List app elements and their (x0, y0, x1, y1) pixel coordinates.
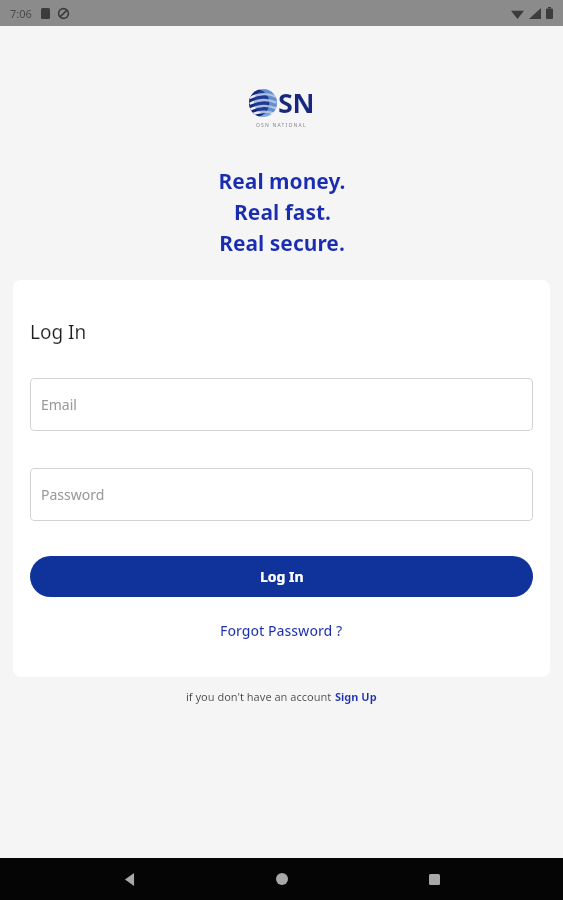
button[interactable]: Home (259, 858, 305, 900)
staticText: Log In (30, 319, 87, 345)
button[interactable]: Email (30, 378, 533, 431)
button[interactable]: Recent apps (411, 858, 457, 900)
staticText: Forgot Password ? (220, 621, 343, 640)
staticText: Real secure. (219, 229, 345, 258)
staticText: 7:06 (10, 6, 32, 21)
staticText: SN (278, 84, 314, 121)
button[interactable]: Sign Up (335, 689, 377, 704)
button[interactable]: Log In (30, 556, 533, 597)
staticText: OSN NATIONAL (256, 122, 307, 129)
staticText: if you don't have an account (186, 689, 335, 704)
staticText: Sign Up (335, 689, 377, 704)
staticText: Real fast. (234, 198, 331, 227)
staticText: Real money. (218, 167, 346, 196)
staticText: Password (41, 485, 105, 504)
button[interactable]: Forgot Password ? (30, 617, 533, 644)
button[interactable]: Back (106, 858, 152, 900)
button[interactable]: Password (30, 468, 533, 521)
staticText: Email (41, 395, 77, 414)
staticText: Log In (260, 567, 304, 586)
